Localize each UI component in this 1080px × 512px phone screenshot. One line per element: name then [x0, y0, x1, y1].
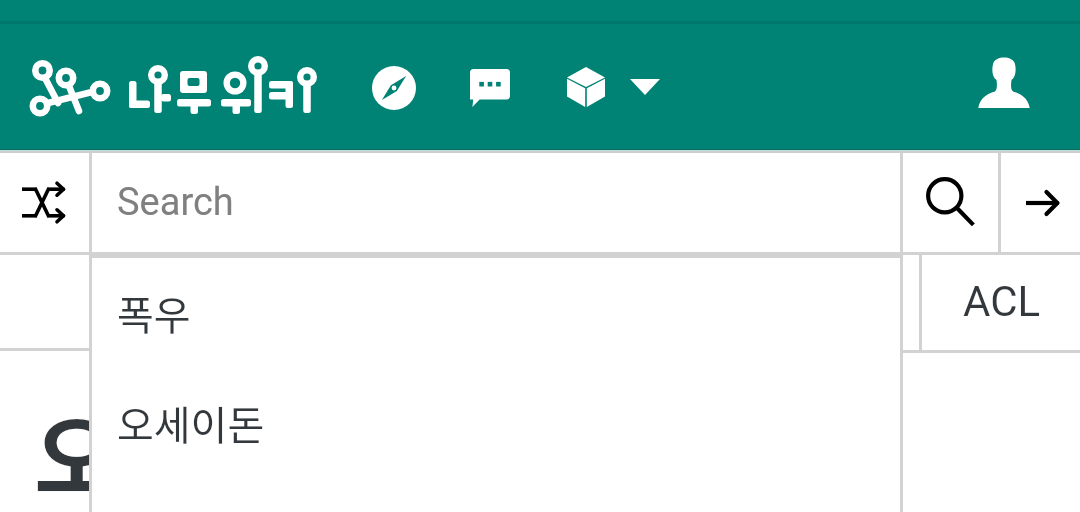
- button[interactable]: 폭우: [89, 258, 903, 367]
- staticText: 폭우: [117, 284, 191, 342]
- button[interactable]: Search: [92, 150, 900, 255]
- button[interactable]: Namuwiki home: [20, 50, 330, 122]
- staticText: 오세이돈: [117, 394, 265, 452]
- button[interactable]: Tools menu: [553, 53, 671, 121]
- button[interactable]: Go: [1002, 150, 1080, 255]
- button[interactable]: Profile: [972, 50, 1036, 114]
- button[interactable]: Search: [903, 150, 998, 255]
- button[interactable]: Explore: [362, 56, 426, 120]
- button[interactable]: Discussion: [458, 54, 522, 122]
- staticText: ACL: [963, 277, 1041, 326]
- staticText: 오세이돈: [34, 385, 377, 512]
- staticText: Search: [117, 180, 234, 225]
- button[interactable]: 오세이돈: [89, 367, 903, 478]
- button[interactable]: ACL: [919, 253, 1080, 350]
- button[interactable]: Random page: [0, 150, 89, 255]
